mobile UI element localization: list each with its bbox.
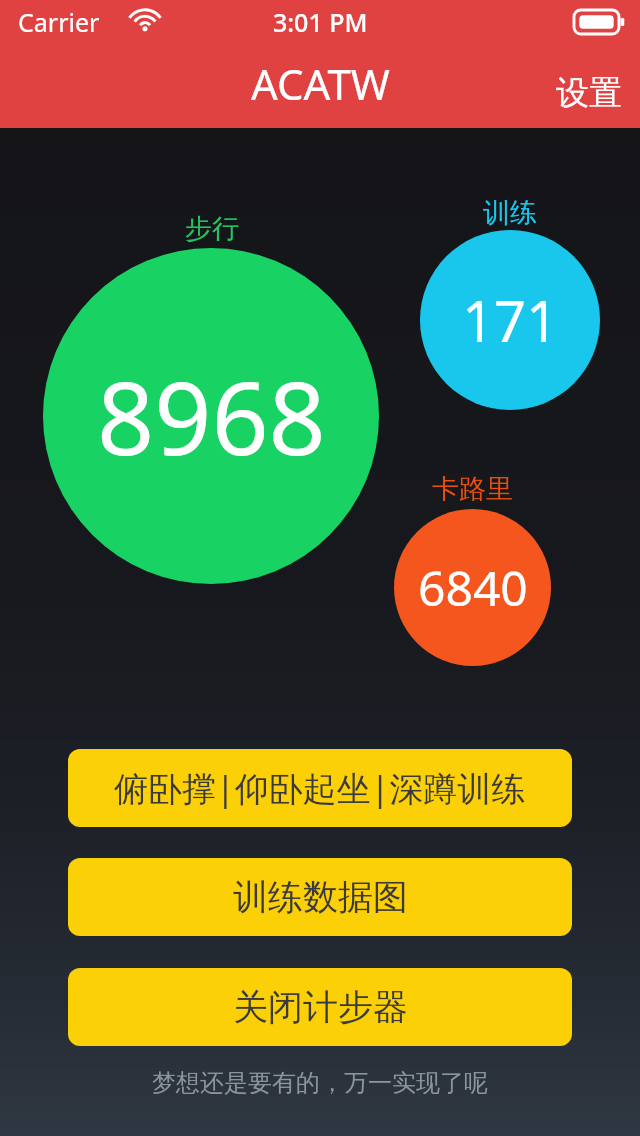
staticText: 训练数据图	[233, 875, 408, 919]
staticText: 6840	[418, 555, 528, 620]
staticText: 关闭计步器	[233, 985, 408, 1029]
button[interactable]: 6840	[394, 509, 551, 666]
staticText: ACATW	[251, 55, 390, 112]
staticText: 俯卧撑|仰卧起坐|深蹲训练	[114, 765, 526, 811]
button[interactable]: 设置	[536, 62, 640, 128]
button[interactable]: 8968	[43, 248, 379, 584]
staticText: 梦想还是要有的，万一实现了呢	[0, 1068, 640, 1098]
staticText: 步行	[185, 212, 239, 246]
staticText: 8968	[97, 348, 326, 484]
staticText: 设置	[556, 72, 622, 114]
staticText: 卡路里	[432, 472, 513, 506]
staticText: 3:01 PM	[273, 5, 368, 39]
staticText: Carrier	[18, 5, 100, 39]
staticText: 训练	[483, 196, 537, 230]
button[interactable]: 俯卧撑|仰卧起坐|深蹲训练	[68, 749, 572, 827]
button[interactable]: 关闭计步器	[68, 968, 572, 1046]
button[interactable]: 训练数据图	[68, 858, 572, 936]
staticText: 171	[462, 282, 559, 358]
button[interactable]: 171	[420, 230, 600, 410]
